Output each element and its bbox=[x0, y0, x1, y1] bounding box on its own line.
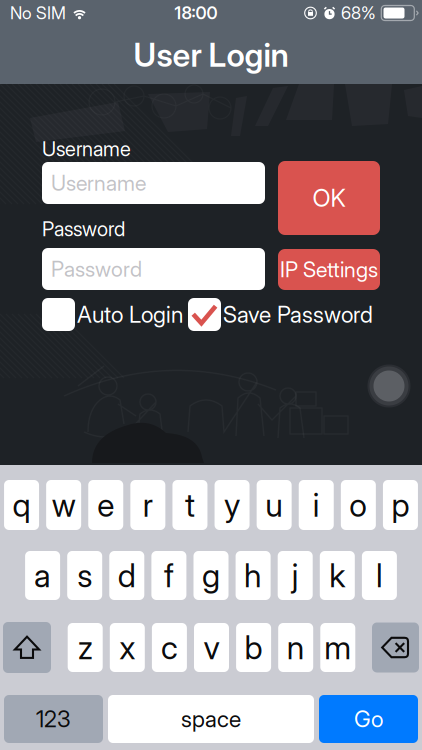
staticText: t bbox=[185, 486, 195, 524]
staticText: User Login bbox=[133, 36, 288, 74]
staticText: space bbox=[181, 705, 241, 733]
staticText: 68% bbox=[341, 2, 376, 23]
staticText: i bbox=[313, 486, 320, 524]
staticText: Go bbox=[354, 705, 383, 733]
button[interactable]: OK bbox=[278, 161, 380, 235]
staticText: Password bbox=[51, 256, 142, 282]
button[interactable]: z bbox=[68, 623, 103, 672]
staticText: Save Password bbox=[223, 301, 373, 328]
staticText: Auto Login bbox=[77, 301, 183, 328]
staticText: a bbox=[34, 556, 51, 595]
button[interactable]: 123 bbox=[4, 695, 103, 743]
button[interactable]: space bbox=[108, 695, 314, 743]
button[interactable]: IP Settings bbox=[278, 249, 380, 290]
staticText: OK bbox=[312, 183, 345, 212]
staticText: c bbox=[161, 628, 178, 667]
staticText: h bbox=[244, 556, 262, 595]
staticText: b bbox=[245, 628, 263, 667]
staticText: w bbox=[52, 486, 76, 524]
button[interactable]: b bbox=[236, 623, 271, 672]
staticText: z bbox=[78, 628, 93, 667]
button[interactable]: t bbox=[172, 480, 207, 530]
button[interactable]: i bbox=[299, 480, 334, 530]
staticText: IP Settings bbox=[280, 257, 378, 282]
button[interactable]: j bbox=[278, 551, 313, 600]
staticText: y bbox=[224, 486, 240, 524]
button[interactable]: d bbox=[109, 551, 144, 600]
button[interactable]: s bbox=[67, 551, 102, 600]
staticText: r bbox=[143, 486, 153, 524]
button[interactable]: f bbox=[151, 551, 186, 600]
staticText: m bbox=[324, 628, 351, 667]
button[interactable]: n bbox=[278, 623, 313, 672]
staticText: 18:00 bbox=[174, 2, 217, 23]
staticText: 123 bbox=[36, 705, 71, 733]
button[interactable]: Shift bbox=[3, 622, 51, 673]
staticText: l bbox=[376, 556, 383, 595]
staticText: d bbox=[118, 556, 136, 595]
staticText: k bbox=[329, 556, 345, 595]
staticText: f bbox=[164, 556, 174, 595]
staticText: v bbox=[203, 628, 219, 667]
button[interactable]: Auto Login bbox=[42, 298, 183, 331]
staticText: No SIM bbox=[10, 2, 66, 23]
button[interactable]: q bbox=[4, 480, 39, 530]
button[interactable]: w bbox=[46, 480, 81, 530]
staticText: Username bbox=[51, 170, 146, 196]
button[interactable]: p bbox=[383, 480, 418, 530]
button[interactable]: m bbox=[320, 623, 355, 672]
button[interactable]: u bbox=[257, 480, 292, 530]
button[interactable]: h bbox=[236, 551, 271, 600]
button[interactable]: k bbox=[320, 551, 355, 600]
staticText: Username bbox=[42, 137, 131, 161]
button[interactable]: g bbox=[193, 551, 228, 600]
staticText: n bbox=[287, 628, 305, 667]
button[interactable]: Save Password bbox=[188, 298, 373, 331]
button[interactable]: v bbox=[194, 623, 229, 672]
button[interactable]: Go bbox=[319, 695, 418, 743]
button[interactable]: y bbox=[215, 480, 250, 530]
button[interactable]: e bbox=[88, 480, 123, 530]
staticText: g bbox=[202, 556, 220, 595]
staticText: q bbox=[13, 486, 31, 524]
staticText: j bbox=[292, 556, 299, 595]
staticText: p bbox=[391, 486, 409, 524]
staticText: u bbox=[265, 486, 283, 524]
staticText: x bbox=[119, 628, 135, 667]
staticText: e bbox=[97, 486, 114, 524]
button[interactable]: Delete bbox=[372, 622, 419, 672]
staticText: Password bbox=[42, 217, 125, 241]
staticText: s bbox=[77, 556, 92, 595]
button[interactable]: x bbox=[110, 623, 145, 672]
button[interactable]: l bbox=[362, 551, 397, 600]
staticText: o bbox=[349, 486, 367, 524]
button[interactable]: r bbox=[130, 480, 165, 530]
button[interactable]: c bbox=[152, 623, 187, 672]
button[interactable]: o bbox=[341, 480, 376, 530]
button[interactable]: a bbox=[25, 551, 60, 600]
